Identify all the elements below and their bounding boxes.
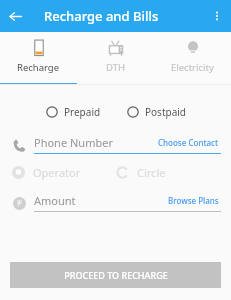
button[interactable]: More options [203, 2, 231, 30]
staticText: Prepaid [64, 105, 101, 119]
staticText: Operator [33, 165, 81, 180]
button[interactable]: Back [0, 1, 30, 31]
staticText: Postpaid [145, 105, 186, 119]
button[interactable]: Browse Plans [166, 193, 221, 208]
staticText: Recharge [17, 61, 60, 74]
staticText: Amount [34, 193, 166, 208]
staticText: Electricity [171, 61, 214, 74]
staticText: Recharge and Bills [44, 7, 159, 25]
button[interactable]: PROCEED TO RECHARGE [10, 262, 221, 288]
staticText: Circle [137, 165, 166, 180]
button[interactable]: DTH [77, 32, 154, 85]
button[interactable]: Postpaid [127, 103, 186, 121]
button[interactable]: Electricity [154, 32, 231, 85]
button[interactable]: Choose Contact [156, 135, 221, 150]
staticText: PROCEED TO RECHARGE [64, 269, 168, 281]
button[interactable]: Recharge [0, 32, 77, 85]
staticText: Phone Number [34, 135, 156, 150]
button[interactable]: Prepaid [46, 103, 101, 121]
staticText: DTH [106, 61, 125, 74]
staticText: Browse Plans [168, 195, 219, 206]
staticText: Choose Contact [158, 137, 219, 148]
